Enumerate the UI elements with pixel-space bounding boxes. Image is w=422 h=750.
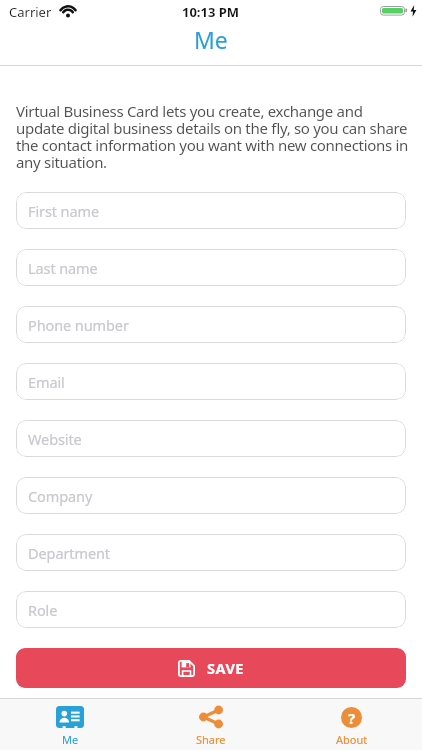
button[interactable]: Company — [16, 477, 406, 514]
button[interactable]: Phone number — [16, 306, 406, 343]
staticText: Share — [196, 732, 226, 747]
staticText: Website — [28, 429, 82, 449]
staticText: Me — [62, 732, 79, 747]
staticText: Role — [28, 600, 58, 620]
button[interactable]: Share — [140, 705, 281, 750]
staticText: About — [336, 732, 368, 747]
staticText: Last name — [28, 258, 98, 278]
button[interactable]: SAVE — [16, 648, 406, 688]
staticText: Virtual Business Card lets you create, e… — [16, 101, 409, 173]
button[interactable]: Website — [16, 420, 406, 457]
staticText: SAVE — [207, 658, 244, 678]
button[interactable]: Me — [0, 705, 140, 750]
staticText: 10:13 PM — [182, 3, 240, 21]
button[interactable]: Email — [16, 363, 406, 400]
staticText: Department — [28, 543, 110, 563]
staticText: Me — [194, 24, 228, 55]
button[interactable]: Role — [16, 591, 406, 628]
staticText: Company — [28, 486, 93, 506]
button[interactable]: Last name — [16, 249, 406, 286]
staticText: Phone number — [28, 315, 129, 335]
staticText: Carrier — [9, 3, 52, 21]
staticText: Email — [28, 372, 65, 392]
staticText: ? — [348, 708, 356, 728]
button[interactable]: Department — [16, 534, 406, 571]
button[interactable]: ? — [281, 705, 422, 750]
button[interactable]: First name — [16, 192, 406, 229]
staticText: First name — [28, 201, 100, 221]
